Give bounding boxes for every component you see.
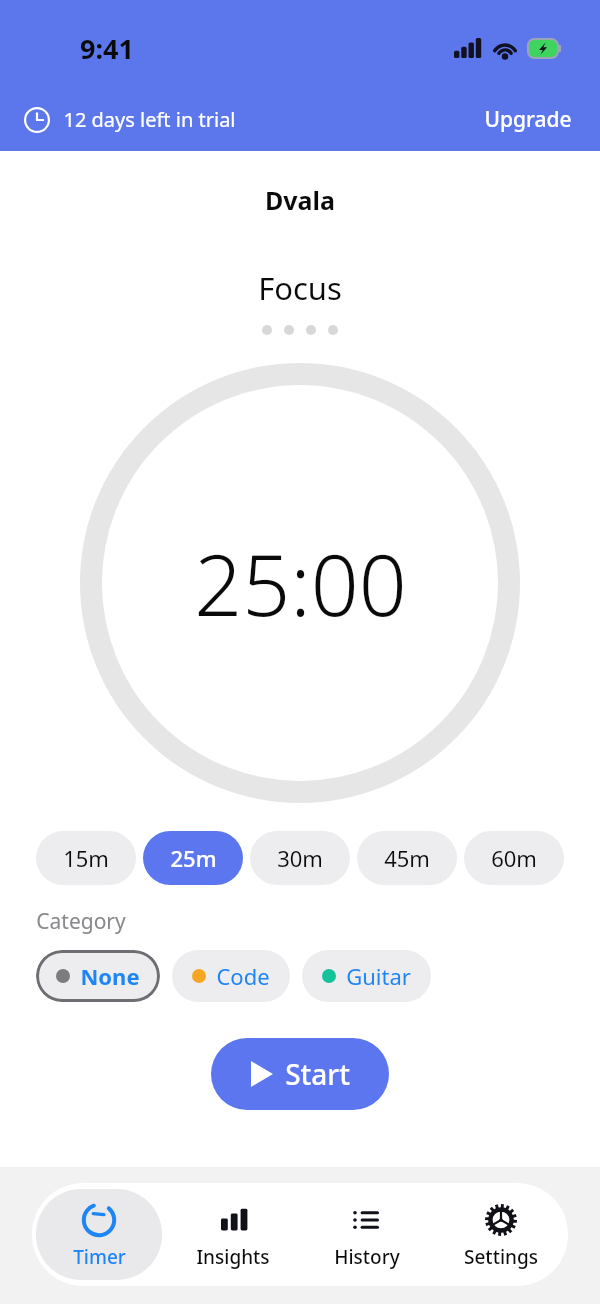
button[interactable]: 25m [143,831,243,885]
staticText: 25:00 [194,526,407,640]
other: Timer [79,1200,119,1240]
staticText: Insights [196,1244,270,1270]
staticText: Category [36,907,126,936]
other: History [347,1200,387,1240]
staticText: 15m [63,843,109,873]
staticText: None [80,961,140,991]
button[interactable]: Guitar [302,950,431,1002]
staticText: History [334,1244,400,1270]
button[interactable]: Timer [36,1189,162,1280]
staticText: 45m [384,843,430,873]
button[interactable]: 30m [250,831,350,885]
other: Settings [481,1200,521,1240]
staticText: Guitar [346,961,411,991]
other: Insights [213,1200,253,1240]
button[interactable]: Settings [438,1189,564,1280]
staticText: Upgrade [484,105,572,134]
staticText: Timer [73,1244,126,1270]
staticText: 30m [277,843,323,873]
button[interactable]: 45m [357,831,457,885]
button[interactable]: Start [211,1038,389,1110]
button[interactable]: None [36,950,160,1002]
button[interactable]: Code [172,950,290,1002]
staticText: Code [216,961,270,991]
staticText: 12 days left in trial [63,106,236,133]
button[interactable]: Insights [170,1189,296,1280]
staticText: Focus [258,267,342,309]
staticText: Start [285,1055,350,1093]
staticText: 25m [170,843,217,873]
staticText: Settings [464,1244,538,1270]
button[interactable]: 60m [464,831,564,885]
staticText: Dvala [265,183,335,217]
button[interactable]: 12 days left in trial [24,106,236,133]
button[interactable]: History [304,1189,430,1280]
staticText: 9:41 [80,30,134,67]
button[interactable]: 15m [36,831,136,885]
staticText: 60m [491,843,537,873]
button[interactable]: Upgrade [480,101,576,138]
